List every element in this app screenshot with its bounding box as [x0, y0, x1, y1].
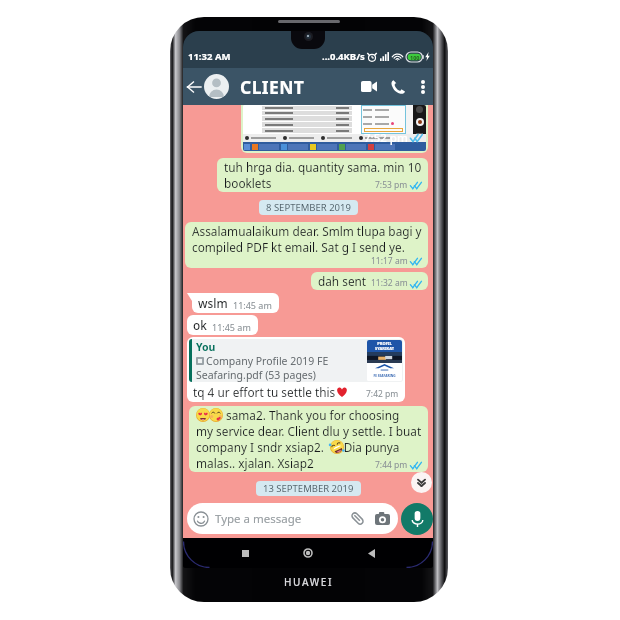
- staticText: 11:45 am: [233, 299, 272, 311]
- button[interactable]: More options: [412, 68, 433, 105]
- staticText: SYARIKAT: [367, 346, 402, 351]
- button[interactable]: Voice call: [383, 68, 412, 105]
- staticText: Seafaring.pdf (53 pages): [196, 368, 316, 382]
- staticText: FE SEAFARING: [367, 374, 402, 378]
- button[interactable]: Voice message: [401, 503, 433, 535]
- button[interactable]: Type a message: [187, 503, 398, 534]
- button[interactable]: Assalamualaikum dear. Smlm tlupa bagi y: [185, 222, 428, 268]
- staticText: compiled PDF kt email. Sat g I send ye.: [192, 239, 405, 255]
- staticText: 11:17 am: [371, 255, 408, 267]
- button[interactable]: Photo message: [243, 105, 426, 151]
- button[interactable]: Video call: [354, 68, 383, 105]
- staticText: booklets: [224, 175, 272, 191]
- button[interactable]: Scroll to bottom: [411, 472, 432, 493]
- staticText: 7:44 pm: [375, 459, 408, 471]
- button[interactable]: You: [187, 337, 405, 402]
- staticText: company I sndr xsiap2. Dia punya: [196, 439, 400, 455]
- staticText: 11:32 AM: [188, 50, 231, 63]
- button[interactable]: wslm: [192, 293, 279, 313]
- staticText: 7:52 pm: [364, 130, 408, 146]
- staticText: my service dear. Client dlu y settle. I …: [196, 423, 422, 439]
- staticText: tq 4 ur effort tu settle this: [193, 384, 336, 400]
- button[interactable]: sama2. Thank you for choosing: [189, 406, 428, 472]
- staticText: 7:42 pm: [366, 388, 399, 400]
- button[interactable]: Contact photo: [204, 74, 229, 99]
- staticText: 8 SEPTEMBER 2019: [266, 201, 351, 214]
- button[interactable]: dah sent: [311, 272, 428, 290]
- staticText: CLIENT: [240, 75, 305, 99]
- staticText: Company Profile 2019 FE: [206, 354, 329, 368]
- staticText: 11:45 am: [212, 321, 251, 333]
- button[interactable]: Back: [183, 68, 204, 105]
- staticText: malas.. xjalan. Xsiap2: [196, 455, 314, 471]
- staticText: wslm: [198, 295, 228, 311]
- staticText: HUAWEI: [284, 575, 334, 589]
- staticText: Assalamualaikum dear. Smlm tlupa bagi y: [192, 223, 422, 239]
- button[interactable]: Back: [356, 538, 386, 568]
- button[interactable]: ok: [187, 315, 258, 335]
- staticText: ok: [193, 317, 207, 333]
- staticText: You: [196, 340, 216, 354]
- staticText: 11:32 am: [371, 277, 408, 289]
- button[interactable]: Recent apps: [230, 538, 260, 568]
- staticText: tuh hrga dia. quantity sama. min 10: [224, 159, 422, 175]
- staticText: ...0.4KB/s: [322, 50, 365, 63]
- button[interactable]: tuh hrga dia. quantity sama. min 10: [217, 158, 428, 192]
- staticText: Type a message: [215, 511, 302, 527]
- staticText: sama2. Thank you for choosing: [196, 407, 400, 423]
- staticText: 7:53 pm: [375, 179, 408, 191]
- staticText: 100: [410, 54, 420, 61]
- staticText: dah sent: [318, 273, 367, 289]
- staticText: 13 SEPTEMBER 2019: [263, 482, 354, 495]
- staticText: PROFIL: [367, 341, 402, 346]
- button[interactable]: Home: [293, 538, 323, 568]
